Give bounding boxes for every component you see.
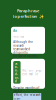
staticText: Despite months of careful [13, 86, 39, 93]
staticText: Fluent [22, 69, 27, 76]
button[interactable]: Fluent [22, 69, 27, 76]
staticText: team worked diligently [13, 47, 30, 54]
staticText: were unable to reach a [13, 62, 35, 69]
staticText: Paraphrase [17, 8, 39, 13]
staticText: Aa [13, 29, 17, 32]
staticText: effort, the research team [14, 93, 41, 100]
staticText: to perfection ✨ [12, 13, 43, 19]
staticText: Your text [13, 35, 24, 38]
staticText: Standard [15, 62, 19, 83]
staticText: Formal [29, 69, 34, 76]
staticText: Simple [35, 69, 42, 76]
button[interactable]: Simple [35, 69, 42, 76]
button[interactable]: Standard [13, 61, 21, 84]
staticText: Although the research [13, 40, 33, 47]
button[interactable]: Formal [29, 69, 34, 76]
staticText: firm conclusion. [13, 69, 35, 72]
staticText: for several months, they [13, 54, 38, 62]
